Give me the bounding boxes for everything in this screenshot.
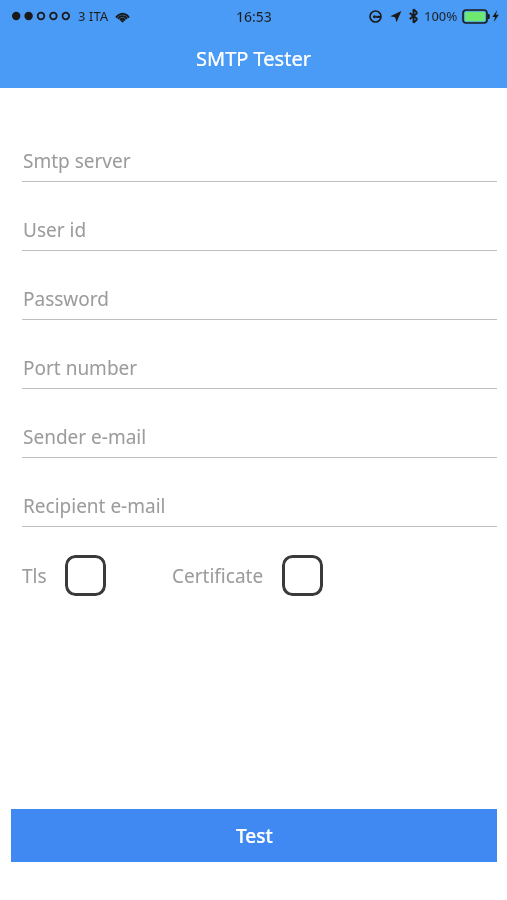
staticText: SMTP Tester xyxy=(196,45,311,72)
staticText: 3 ITA xyxy=(78,7,109,25)
button[interactable]: Certificate checkbox xyxy=(282,555,323,596)
staticText: Port number xyxy=(23,355,138,381)
staticText: Smtp server xyxy=(23,148,131,174)
staticText: 16:53 xyxy=(236,7,272,26)
staticText: Recipient e-mail xyxy=(23,493,166,519)
staticText: Sender e-mail xyxy=(23,424,147,450)
staticText: Certificate xyxy=(172,563,264,589)
button[interactable]: Test xyxy=(11,809,497,862)
staticText: User id xyxy=(23,217,87,243)
staticText: Password xyxy=(23,286,109,312)
button[interactable]: Tls checkbox xyxy=(65,555,106,596)
staticText: Test xyxy=(236,823,273,849)
staticText: Tls xyxy=(22,563,47,589)
staticText: 100% xyxy=(424,7,458,25)
